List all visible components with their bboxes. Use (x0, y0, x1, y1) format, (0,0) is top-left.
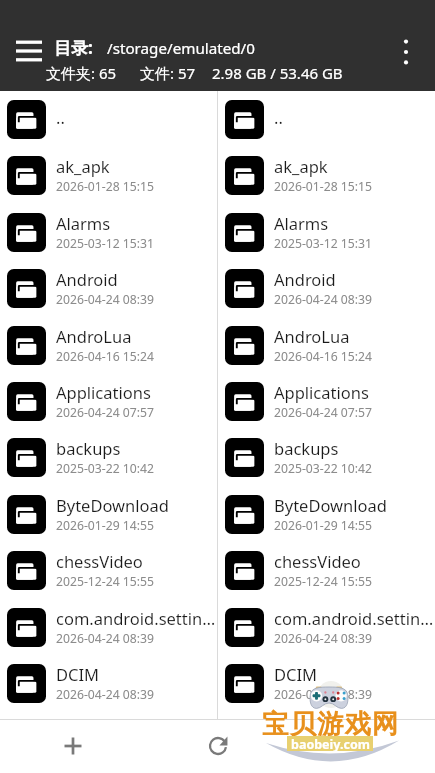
staticText: Alarms (274, 212, 329, 234)
staticText: .. (56, 106, 65, 128)
staticText: 2026-04-24 08:39 (56, 686, 154, 703)
staticText: /storage/emulated/0 (107, 38, 255, 59)
staticText: 2026-04-24 08:39 (274, 630, 372, 647)
staticText: DCIM (56, 663, 100, 685)
staticText: 2026-04-24 07:57 (56, 404, 154, 421)
button[interactable]: com.android.settin… (218, 599, 435, 655)
staticText: 2025-12-24 15:55 (274, 573, 372, 590)
staticText: 2026-04-24 08:39 (56, 630, 154, 647)
button[interactable]: Menu (9, 31, 49, 71)
staticText: ByteDownload (274, 494, 387, 516)
staticText: backups (274, 437, 339, 459)
staticText: chessVideo (274, 550, 361, 572)
staticText: 文件夹: 65 (46, 63, 117, 83)
staticText: 文件: 57 (140, 63, 196, 83)
staticText: chessVideo (56, 550, 143, 572)
staticText: AndroLua (274, 325, 350, 347)
button[interactable]: Alarms (0, 204, 217, 260)
staticText: 2025-03-12 15:31 (274, 235, 372, 252)
button[interactable]: ak_apk (218, 147, 435, 203)
staticText: DCIM (274, 663, 318, 685)
button[interactable]: Android (0, 260, 217, 316)
staticText: 2026-01-28 15:15 (56, 178, 154, 195)
staticText: 2026-04-24 08:39 (274, 291, 372, 308)
button[interactable]: AndroLua (0, 317, 217, 373)
button[interactable]: Alarms (218, 204, 435, 260)
button[interactable]: chessVideo (218, 542, 435, 598)
button[interactable]: Refresh (197, 719, 239, 773)
button[interactable]: .. (0, 91, 217, 147)
staticText: ByteDownload (56, 494, 169, 516)
staticText: Applications (56, 381, 151, 403)
staticText: 目录: (54, 36, 93, 59)
staticText: Android (274, 268, 336, 290)
staticText: 2025-03-12 15:31 (56, 235, 154, 252)
button[interactable]: .. (218, 91, 435, 147)
button[interactable]: Applications (0, 373, 217, 429)
staticText: 2026-04-24 08:39 (56, 291, 154, 308)
staticText: com.android.settin… (274, 607, 434, 629)
button[interactable]: ak_apk (0, 147, 217, 203)
button[interactable]: backups (218, 429, 435, 485)
button[interactable]: backups (0, 429, 217, 485)
staticText: 2026-04-16 15:24 (274, 348, 372, 365)
button[interactable]: DCIM (0, 655, 217, 711)
button[interactable]: com.android.settin… (0, 599, 217, 655)
staticText: 2026-01-29 14:55 (274, 517, 372, 534)
staticText: 2026-01-28 15:15 (274, 178, 372, 195)
staticText: ak_apk (56, 155, 110, 177)
staticText: 宝贝游戏网 (262, 707, 400, 740)
button[interactable]: DCIM (218, 655, 435, 711)
staticText: Applications (274, 381, 369, 403)
button[interactable]: chessVideo (0, 542, 217, 598)
button[interactable]: ByteDownload (0, 486, 217, 542)
staticText: 2025-03-22 10:42 (56, 460, 154, 477)
staticText: 2.98 GB / 53.46 GB (212, 63, 343, 83)
button[interactable]: ByteDownload (218, 486, 435, 542)
staticText: 2026-04-16 15:24 (56, 348, 154, 365)
button[interactable]: Applications (218, 373, 435, 429)
staticText: 2026-04-24 07:57 (274, 404, 372, 421)
staticText: baobeiy.com (291, 736, 370, 751)
staticText: ak_apk (274, 155, 328, 177)
button[interactable]: AndroLua (218, 317, 435, 373)
staticText: backups (56, 437, 121, 459)
staticText: Android (56, 268, 118, 290)
staticText: 2025-12-24 15:55 (56, 573, 154, 590)
button[interactable]: More options (386, 32, 426, 72)
button[interactable]: Android (218, 260, 435, 316)
button[interactable]: Add (52, 719, 94, 773)
staticText: 2026-01-29 14:55 (56, 517, 154, 534)
staticText: AndroLua (56, 325, 132, 347)
staticText: .. (274, 106, 283, 128)
staticText: 2026-04-24 08:39 (274, 686, 372, 703)
staticText: com.android.settin… (56, 607, 216, 629)
staticText: 2025-03-22 10:42 (274, 460, 372, 477)
staticText: Alarms (56, 212, 111, 234)
